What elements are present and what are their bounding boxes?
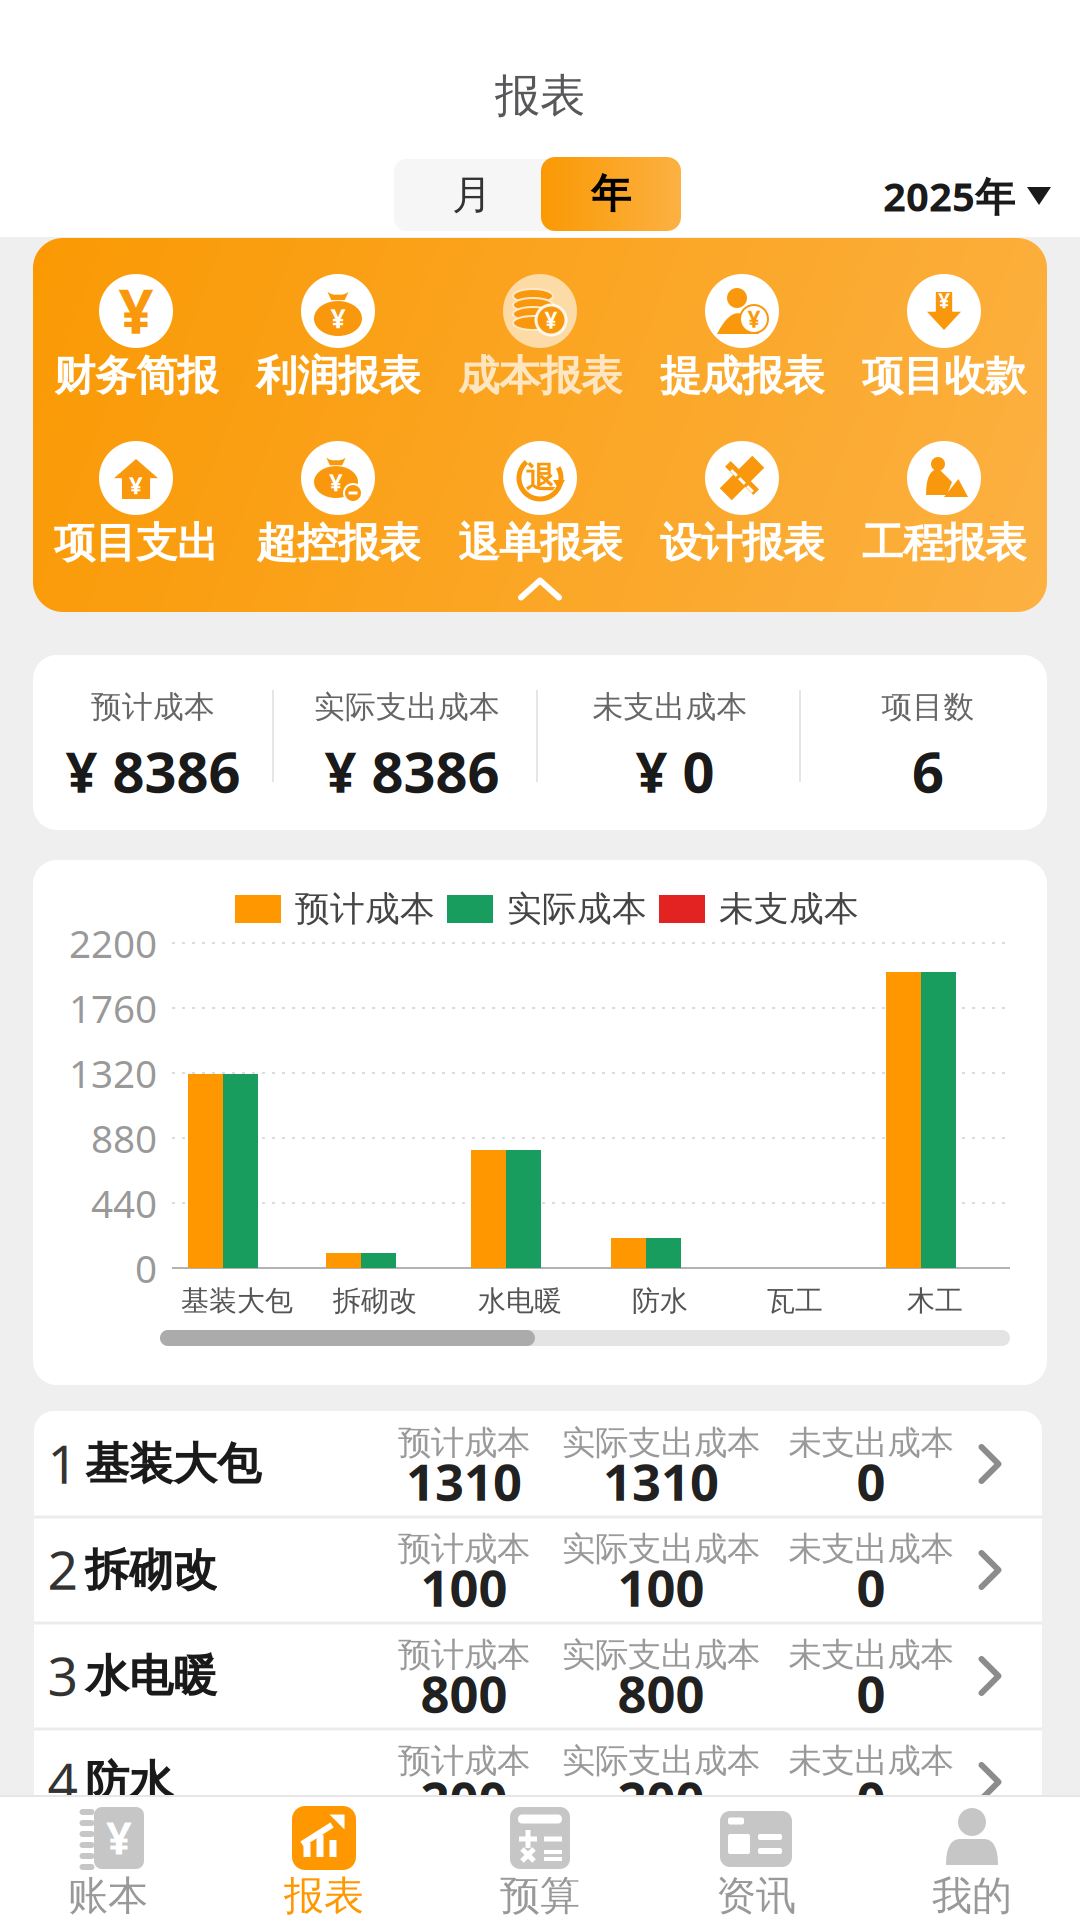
staticText: 实际支出成本 [562, 1528, 760, 1569]
staticText: 1310 [603, 1447, 719, 1515]
button[interactable]: 3 [34, 1623, 1042, 1729]
button[interactable]: 2025年 [883, 169, 1051, 222]
staticText: 账本 [68, 1871, 148, 1920]
staticText: ¥ [129, 469, 143, 501]
staticText: 木工 [907, 1284, 963, 1318]
button[interactable]: 报表 [244, 1798, 404, 1918]
button[interactable]: 我的 [892, 1798, 1052, 1918]
staticText: 6 [912, 734, 944, 808]
staticText: 200 [420, 1765, 507, 1833]
staticText: 月 [452, 170, 492, 219]
staticText: ¥ 8386 [65, 734, 240, 808]
staticText: 退 [525, 460, 554, 496]
staticText: 基装大包 [181, 1284, 293, 1318]
staticText: 800 [617, 1659, 704, 1727]
staticText: 0 [856, 1765, 885, 1833]
staticText: 防水 [632, 1284, 688, 1318]
staticText: 1760 [69, 982, 157, 1034]
staticText: 440 [91, 1177, 157, 1229]
staticText: 实际支出成本 [562, 1740, 760, 1781]
staticText: 资讯 [716, 1871, 796, 1920]
staticText: 4 [47, 1746, 78, 1816]
staticText: 报表 [495, 68, 585, 124]
staticText: 1 [47, 1428, 78, 1498]
staticText: ¥ [106, 1807, 132, 1867]
staticText: 未支出成本 [788, 1528, 953, 1569]
staticText: 水电暖 [85, 1649, 217, 1703]
staticText: 未支出成本 [788, 1740, 953, 1781]
staticText: 未支出成本 [788, 1634, 953, 1675]
button[interactable]: 2 [34, 1517, 1042, 1623]
staticText: 100 [617, 1553, 704, 1621]
staticText: 预计成本 [398, 1740, 530, 1781]
button[interactable]: ¥ [28, 1798, 188, 1918]
staticText: 880 [91, 1112, 157, 1164]
button[interactable]: 退 [439, 427, 641, 587]
staticText: 3 [47, 1640, 78, 1710]
staticText: 瓦工 [767, 1284, 823, 1318]
staticText: 我的 [932, 1871, 1012, 1920]
staticText: 年 [591, 169, 631, 218]
button[interactable]: ¥ [35, 260, 237, 420]
button[interactable]: ¥ [35, 427, 237, 587]
staticText: ¥ [329, 466, 343, 498]
staticText: 未支出成本 [788, 1422, 953, 1463]
staticText: 实际支出成本 [562, 1422, 760, 1463]
staticText: 200 [617, 1765, 704, 1833]
staticText: 报表 [284, 1871, 364, 1920]
staticText: 1310 [406, 1447, 522, 1515]
staticText: 防水 [85, 1755, 173, 1809]
button[interactable]: 收起 [521, 580, 559, 597]
button[interactable]: 年 [541, 157, 681, 231]
staticText: 预计成本 [91, 688, 215, 726]
staticText: 2200 [69, 917, 157, 969]
staticText: 拆砌改 [85, 1543, 217, 1597]
button[interactable]: ¥ [237, 260, 439, 420]
staticText: 未支成本 [719, 888, 859, 930]
staticText: 拆砌改 [333, 1284, 417, 1318]
staticText: 预计成本 [295, 888, 435, 930]
staticText: 水电暖 [478, 1284, 562, 1318]
button[interactable]: 设计报表 [641, 427, 843, 587]
staticText: 100 [420, 1553, 507, 1621]
staticText: ¥ 8386 [324, 734, 499, 808]
button[interactable]: ¥ [641, 260, 843, 420]
staticText: 提成报表 [660, 351, 824, 401]
staticText: 项目收款 [862, 351, 1026, 401]
staticText: 工程报表 [862, 518, 1026, 568]
staticText: 实际支出成本 [562, 1634, 760, 1675]
staticText: 0 [856, 1447, 885, 1515]
button[interactable]: 月 [394, 159, 681, 231]
staticText: 成本报表 [458, 351, 622, 401]
staticText: 2 [47, 1534, 78, 1604]
button[interactable]: ¥ [237, 427, 439, 587]
staticText: 超控报表 [256, 518, 420, 568]
staticText: 基装大包 [85, 1437, 261, 1491]
staticText: 预计成本 [398, 1634, 530, 1675]
button[interactable]: 资讯 [676, 1798, 836, 1918]
staticText: ¥ [330, 300, 345, 336]
button[interactable]: 预算 [460, 1798, 620, 1918]
staticText: 未支出成本 [592, 688, 747, 726]
staticText: 财务简报 [54, 351, 218, 401]
button[interactable]: ¥ [843, 260, 1045, 420]
staticText: 0 [856, 1553, 885, 1621]
staticText: 预计成本 [398, 1528, 530, 1569]
staticText: ¥ [747, 304, 760, 334]
button[interactable]: ¥ [439, 260, 641, 420]
staticText: 设计报表 [660, 518, 824, 568]
staticText: ¥ [544, 305, 557, 335]
button[interactable]: 工程报表 [843, 427, 1045, 587]
staticText: ¥ [938, 286, 950, 314]
staticText: 实际成本 [507, 888, 647, 930]
staticText: 1320 [69, 1047, 157, 1099]
staticText: 0 [856, 1659, 885, 1727]
staticText: 预计成本 [398, 1422, 530, 1463]
button[interactable]: 4 [34, 1729, 1042, 1835]
staticText: 2025年 [883, 169, 1015, 222]
staticText: 实际支出成本 [314, 688, 500, 726]
button[interactable]: 1 [34, 1411, 1042, 1517]
staticText: 800 [420, 1659, 507, 1727]
staticText: ¥ 0 [635, 734, 714, 808]
staticText: 退单报表 [458, 518, 622, 568]
